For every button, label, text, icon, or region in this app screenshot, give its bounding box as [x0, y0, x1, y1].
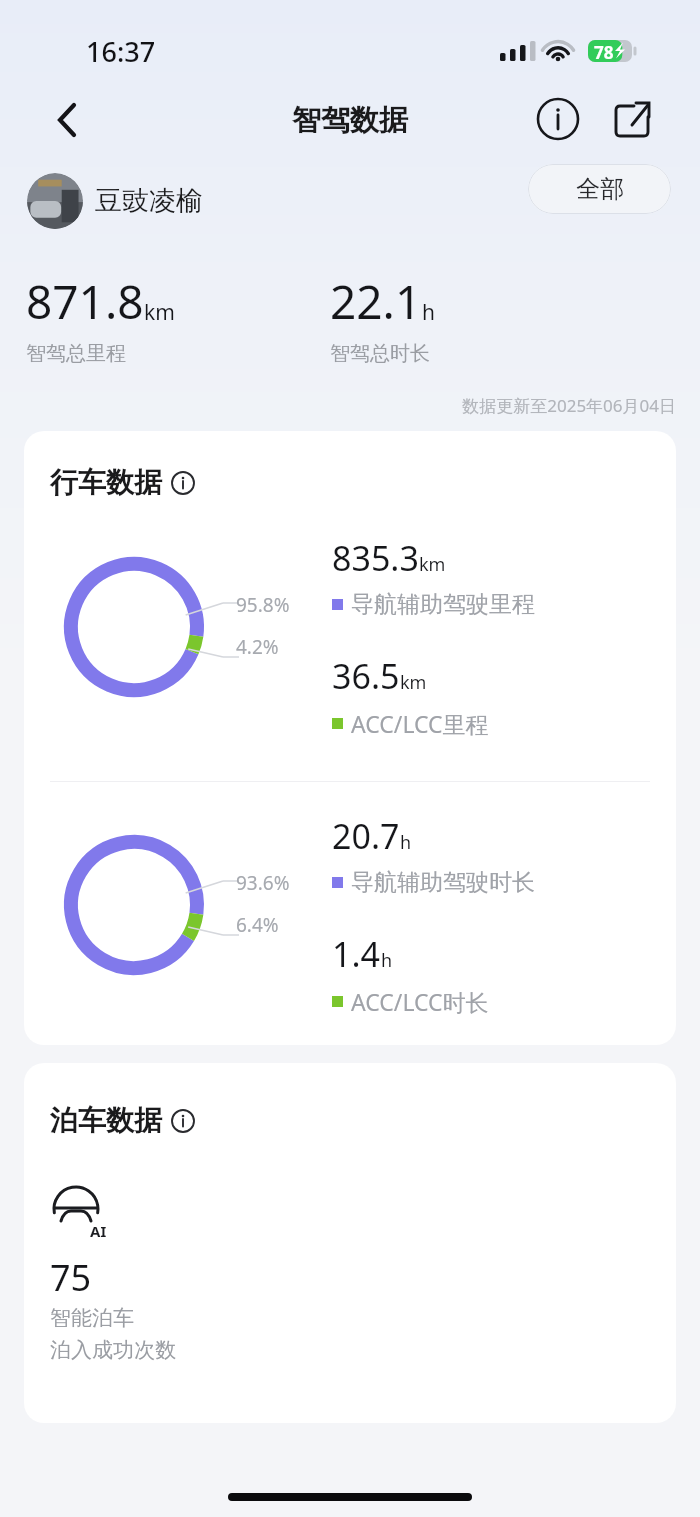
staticText: h: [381, 948, 393, 973]
staticText: 1.4: [332, 931, 381, 977]
staticText: 全部: [576, 174, 624, 204]
staticText: 16:37: [86, 33, 156, 70]
staticText: 智能泊车: [50, 1305, 134, 1331]
button[interactable]: 行车数据: [50, 465, 195, 500]
staticText: h: [400, 830, 412, 855]
staticText: 数据更新至2025年06月04日: [0, 394, 676, 417]
staticText: 95.8%: [236, 592, 290, 618]
staticText: 78: [594, 41, 614, 64]
staticText: h: [422, 298, 435, 327]
button[interactable]: Back: [38, 88, 96, 152]
button[interactable]: 泊车数据: [50, 1103, 195, 1138]
staticText: km: [400, 670, 427, 695]
staticText: km: [419, 552, 446, 577]
staticText: 泊入成功次数: [50, 1337, 176, 1363]
button[interactable]: 全部: [528, 164, 671, 214]
staticText: 835.3: [332, 535, 419, 581]
staticText: km: [144, 298, 175, 327]
staticText: 22.1: [330, 270, 422, 333]
staticText: ACC/LCC里程: [351, 708, 489, 739]
staticText: 20.7: [332, 813, 400, 859]
staticText: 智驾数据: [0, 102, 700, 139]
button[interactable]: 豆豉凌榆: [27, 173, 203, 229]
staticText: 871.8: [26, 270, 144, 333]
staticText: 导航辅助驾驶里程: [351, 590, 535, 619]
staticText: 导航辅助驾驶时长: [351, 868, 535, 897]
staticText: AI: [90, 1221, 107, 1241]
button[interactable]: Info: [531, 92, 585, 146]
staticText: 豆豉凌榆: [95, 184, 203, 218]
staticText: 93.6%: [236, 870, 290, 896]
staticText: 75: [50, 1253, 92, 1302]
staticText: 泊车数据: [50, 1103, 162, 1138]
staticText: 行车数据: [50, 465, 162, 500]
staticText: 4.2%: [236, 634, 279, 660]
staticText: ACC/LCC时长: [351, 986, 489, 1017]
staticText: 智驾总里程: [26, 341, 126, 366]
button[interactable]: Share: [605, 92, 659, 146]
staticText: 36.5: [332, 653, 400, 699]
staticText: 智驾总时长: [330, 341, 430, 366]
staticText: 6.4%: [236, 912, 279, 938]
